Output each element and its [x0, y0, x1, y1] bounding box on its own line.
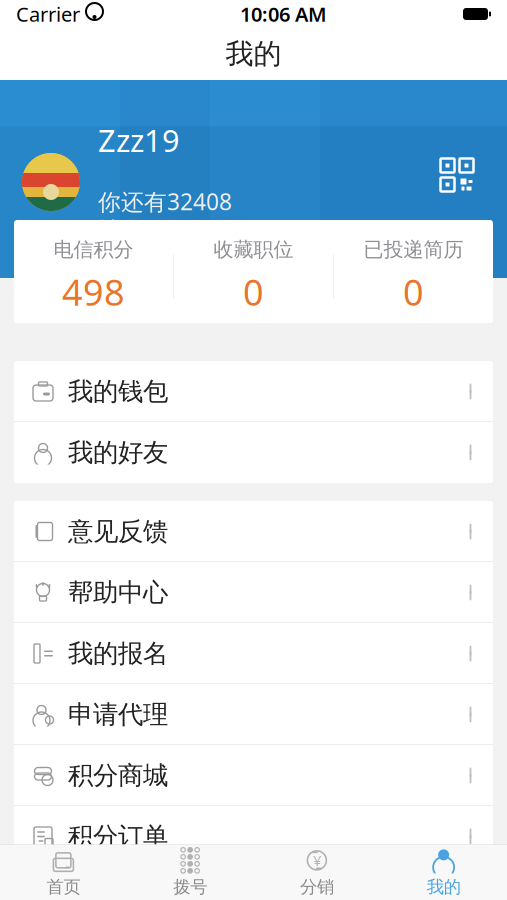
button[interactable]: 我的好友 [14, 422, 493, 483]
staticText: Carrier [16, 1, 80, 27]
staticText: 0 [243, 268, 264, 316]
staticText: 拨号 [173, 876, 207, 898]
staticText: 我的 [427, 876, 461, 898]
staticText: 498 [62, 268, 125, 316]
staticText: 意见反馈 [68, 516, 168, 547]
staticText: 电信积分 [53, 237, 133, 262]
staticText: 我的 [225, 37, 281, 71]
button[interactable]: 电信积分 [14, 237, 173, 316]
button[interactable]: 已投递简历 [334, 237, 493, 316]
staticText: 已投递简历 [363, 237, 463, 262]
button[interactable]: 帮助中心 [14, 562, 493, 623]
button[interactable]: ¥ [253, 845, 380, 900]
staticText: ¥ [313, 851, 321, 870]
button[interactable]: 我的报名 [14, 623, 493, 684]
button[interactable]: 积分订单 [14, 806, 493, 867]
button[interactable]: 申请代理 [14, 684, 493, 745]
button[interactable]: 意见反馈 [14, 501, 493, 562]
staticText: 我的好友 [68, 437, 168, 468]
button[interactable]: 积分商城 [14, 745, 493, 806]
staticText: 10:06 AM [240, 1, 327, 27]
button[interactable]: Profile photo [22, 153, 80, 211]
button[interactable]: 首页 [0, 845, 127, 900]
button[interactable]: 拨号 [127, 845, 254, 900]
staticText: 分销 [300, 876, 334, 898]
staticText: 收藏职位 [213, 237, 293, 262]
staticText: 0 [403, 268, 424, 316]
button[interactable]: 我的 [380, 845, 507, 900]
staticText: 我的钱包 [68, 376, 168, 407]
staticText: 帮助中心 [68, 577, 168, 608]
button[interactable]: 我的钱包 [14, 361, 493, 422]
staticText: 积分订单 [68, 821, 168, 852]
staticText: 首页 [46, 876, 80, 898]
staticText: 积分商城 [68, 760, 168, 791]
staticText: 你还有32408抽奖次数 [98, 186, 232, 244]
staticText: 申请代理 [68, 699, 168, 730]
button[interactable]: Scan QR code [439, 157, 475, 207]
staticText: Zzz19 [98, 120, 180, 160]
button[interactable]: 收藏职位 [174, 237, 333, 316]
staticText: 我的报名 [68, 638, 168, 669]
